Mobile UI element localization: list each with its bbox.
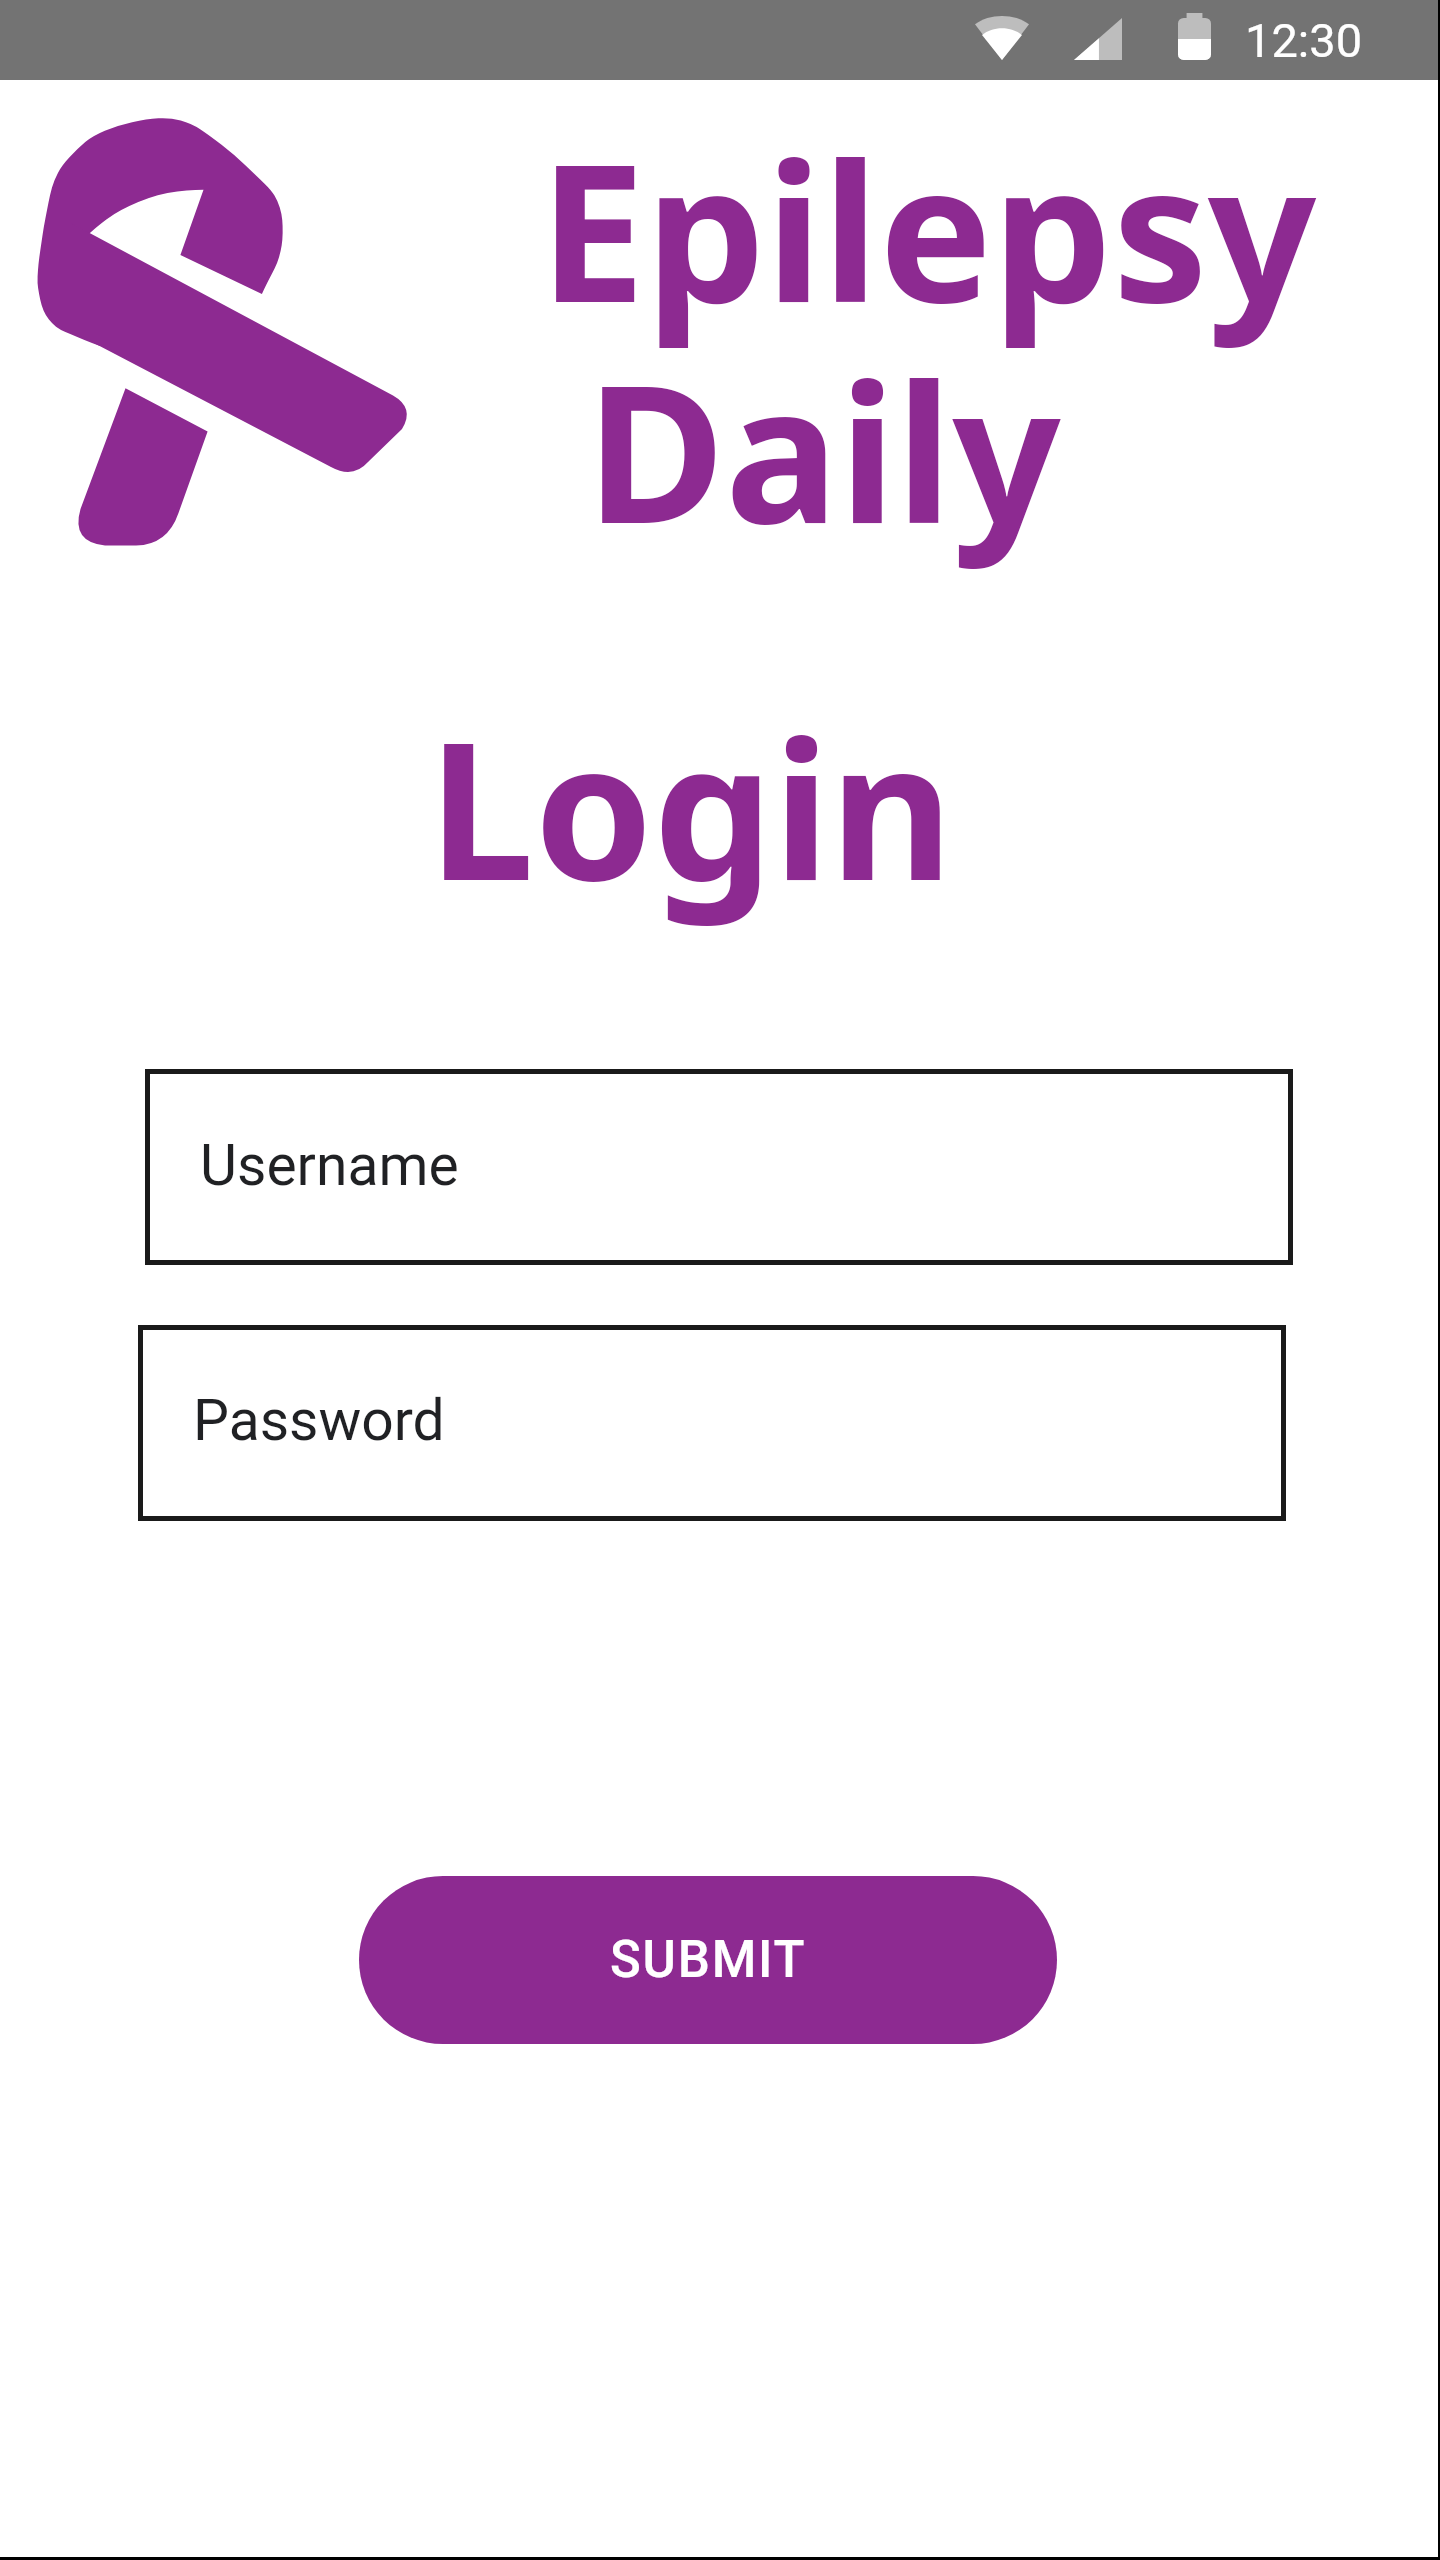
staticText: Username (200, 1132, 459, 1199)
staticText: Password (193, 1387, 445, 1454)
button[interactable]: SUBMIT (359, 1876, 1057, 2044)
staticText: Daily (586, 320, 1061, 579)
staticText: SUBMIT (610, 1930, 807, 1990)
button[interactable]: Password (138, 1325, 1286, 1521)
other: Battery (1178, 13, 1211, 60)
button[interactable]: Username (145, 1069, 1293, 1265)
staticText: Login (428, 677, 954, 936)
staticText: 12:30 (1245, 13, 1363, 68)
staticText: Epilepsy (539, 99, 1317, 358)
other: Wi-Fi (975, 17, 1029, 60)
other: Mobile signal (1074, 18, 1122, 60)
